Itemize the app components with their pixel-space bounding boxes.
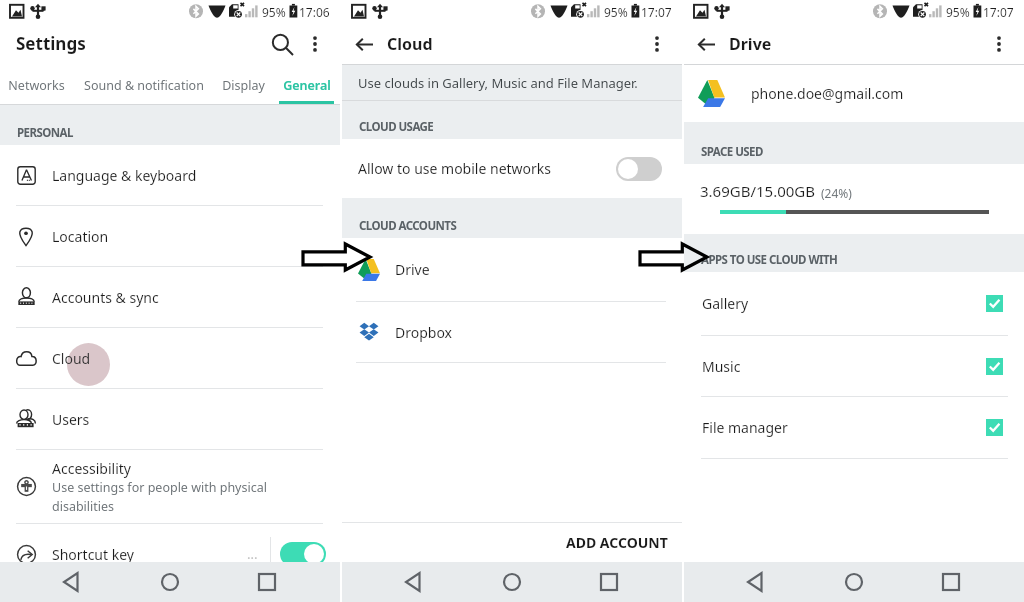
button[interactable]: Back [691,29,721,59]
staticText: Gallery [702,294,749,313]
staticText: Drive [729,33,772,55]
button[interactable]: Back [733,562,781,602]
button[interactable]: Home [146,562,194,602]
staticText: Settings [16,32,86,55]
staticText: Allow to use mobile networks [358,159,552,178]
staticText: File manager [702,418,788,437]
button[interactable]: Users [0,389,340,449]
button[interactable] [280,542,326,566]
button[interactable]: Drive [342,238,682,301]
button[interactable]: Back [391,562,439,602]
button[interactable]: Search [264,26,300,62]
staticText: 95% [946,4,970,20]
staticText: Cloud [387,33,433,55]
staticText: APPS TO USE CLOUD WITH [701,252,838,268]
staticText: Networks [8,77,65,94]
staticText: Location [52,227,109,246]
button[interactable]: Language & keyboard [0,145,340,205]
staticText: 17:06 [299,4,330,20]
button[interactable]: Accessibility [0,450,340,523]
staticText: Cloud [52,349,91,368]
button[interactable]: Networks [7,64,65,104]
button[interactable]: Dropbox [342,302,682,362]
button[interactable]: Home [830,562,878,602]
button[interactable]: Cloud [0,328,340,388]
button[interactable]: phone.doe@gmail.com [684,65,1024,122]
button[interactable]: Music [684,336,1024,396]
staticText: CLOUD ACCOUNTS [359,218,457,234]
staticText: PERSONAL [17,125,73,141]
button[interactable]: General [279,64,334,104]
staticText: Dropbox [395,323,453,342]
staticText: 3.69GB/15.00GB [700,181,816,201]
button[interactable]: Sound & notification [82,64,206,104]
button[interactable]: Location [0,206,340,266]
staticText: ADD ACCOUNT [566,533,668,552]
staticText: 95% [262,4,286,20]
staticText: Drive [395,260,430,279]
staticText: General [283,77,331,94]
button[interactable]: Home [488,562,536,602]
button[interactable]: Gallery [684,272,1024,335]
button[interactable]: Shortcut key [0,524,340,584]
staticText: ... [247,545,258,563]
staticText: Accessibility [52,459,131,478]
button[interactable]: Recents [243,562,291,602]
staticText: 17:07 [983,4,1014,20]
staticText: Use clouds in Gallery, Music and File Ma… [358,74,638,92]
button[interactable]: Accounts & sync [0,267,340,327]
staticText: 95% [604,4,628,20]
staticText: Accounts & sync [52,288,159,307]
button[interactable]: More options [300,29,330,59]
staticText: phone.doe@gmail.com [751,84,904,103]
button[interactable]: Display [220,64,267,104]
button[interactable]: More options [984,29,1014,59]
button[interactable]: Recents [927,562,975,602]
button[interactable] [616,157,662,181]
button[interactable]: More options [642,29,672,59]
staticText: CLOUD USAGE [359,119,434,135]
button[interactable]: Allow to use mobile networks [342,139,682,198]
staticText: Users [52,410,90,429]
button[interactable]: Back [349,29,379,59]
staticText: Language & keyboard [52,166,197,185]
button[interactable]: ADD ACCOUNT [552,525,682,560]
staticText: 17:07 [641,4,672,20]
staticText: SPACE USED [701,144,763,160]
staticText: Display [222,77,265,94]
staticText: Sound & notification [84,77,204,94]
button[interactable]: Recents [585,562,633,602]
staticText: (24%) [821,185,852,201]
staticText: Music [702,357,741,376]
button[interactable]: File manager [684,397,1024,458]
staticText: Use settings for people with physical di… [52,479,267,515]
button[interactable]: Back [49,562,97,602]
staticText: Shortcut key [52,545,134,564]
